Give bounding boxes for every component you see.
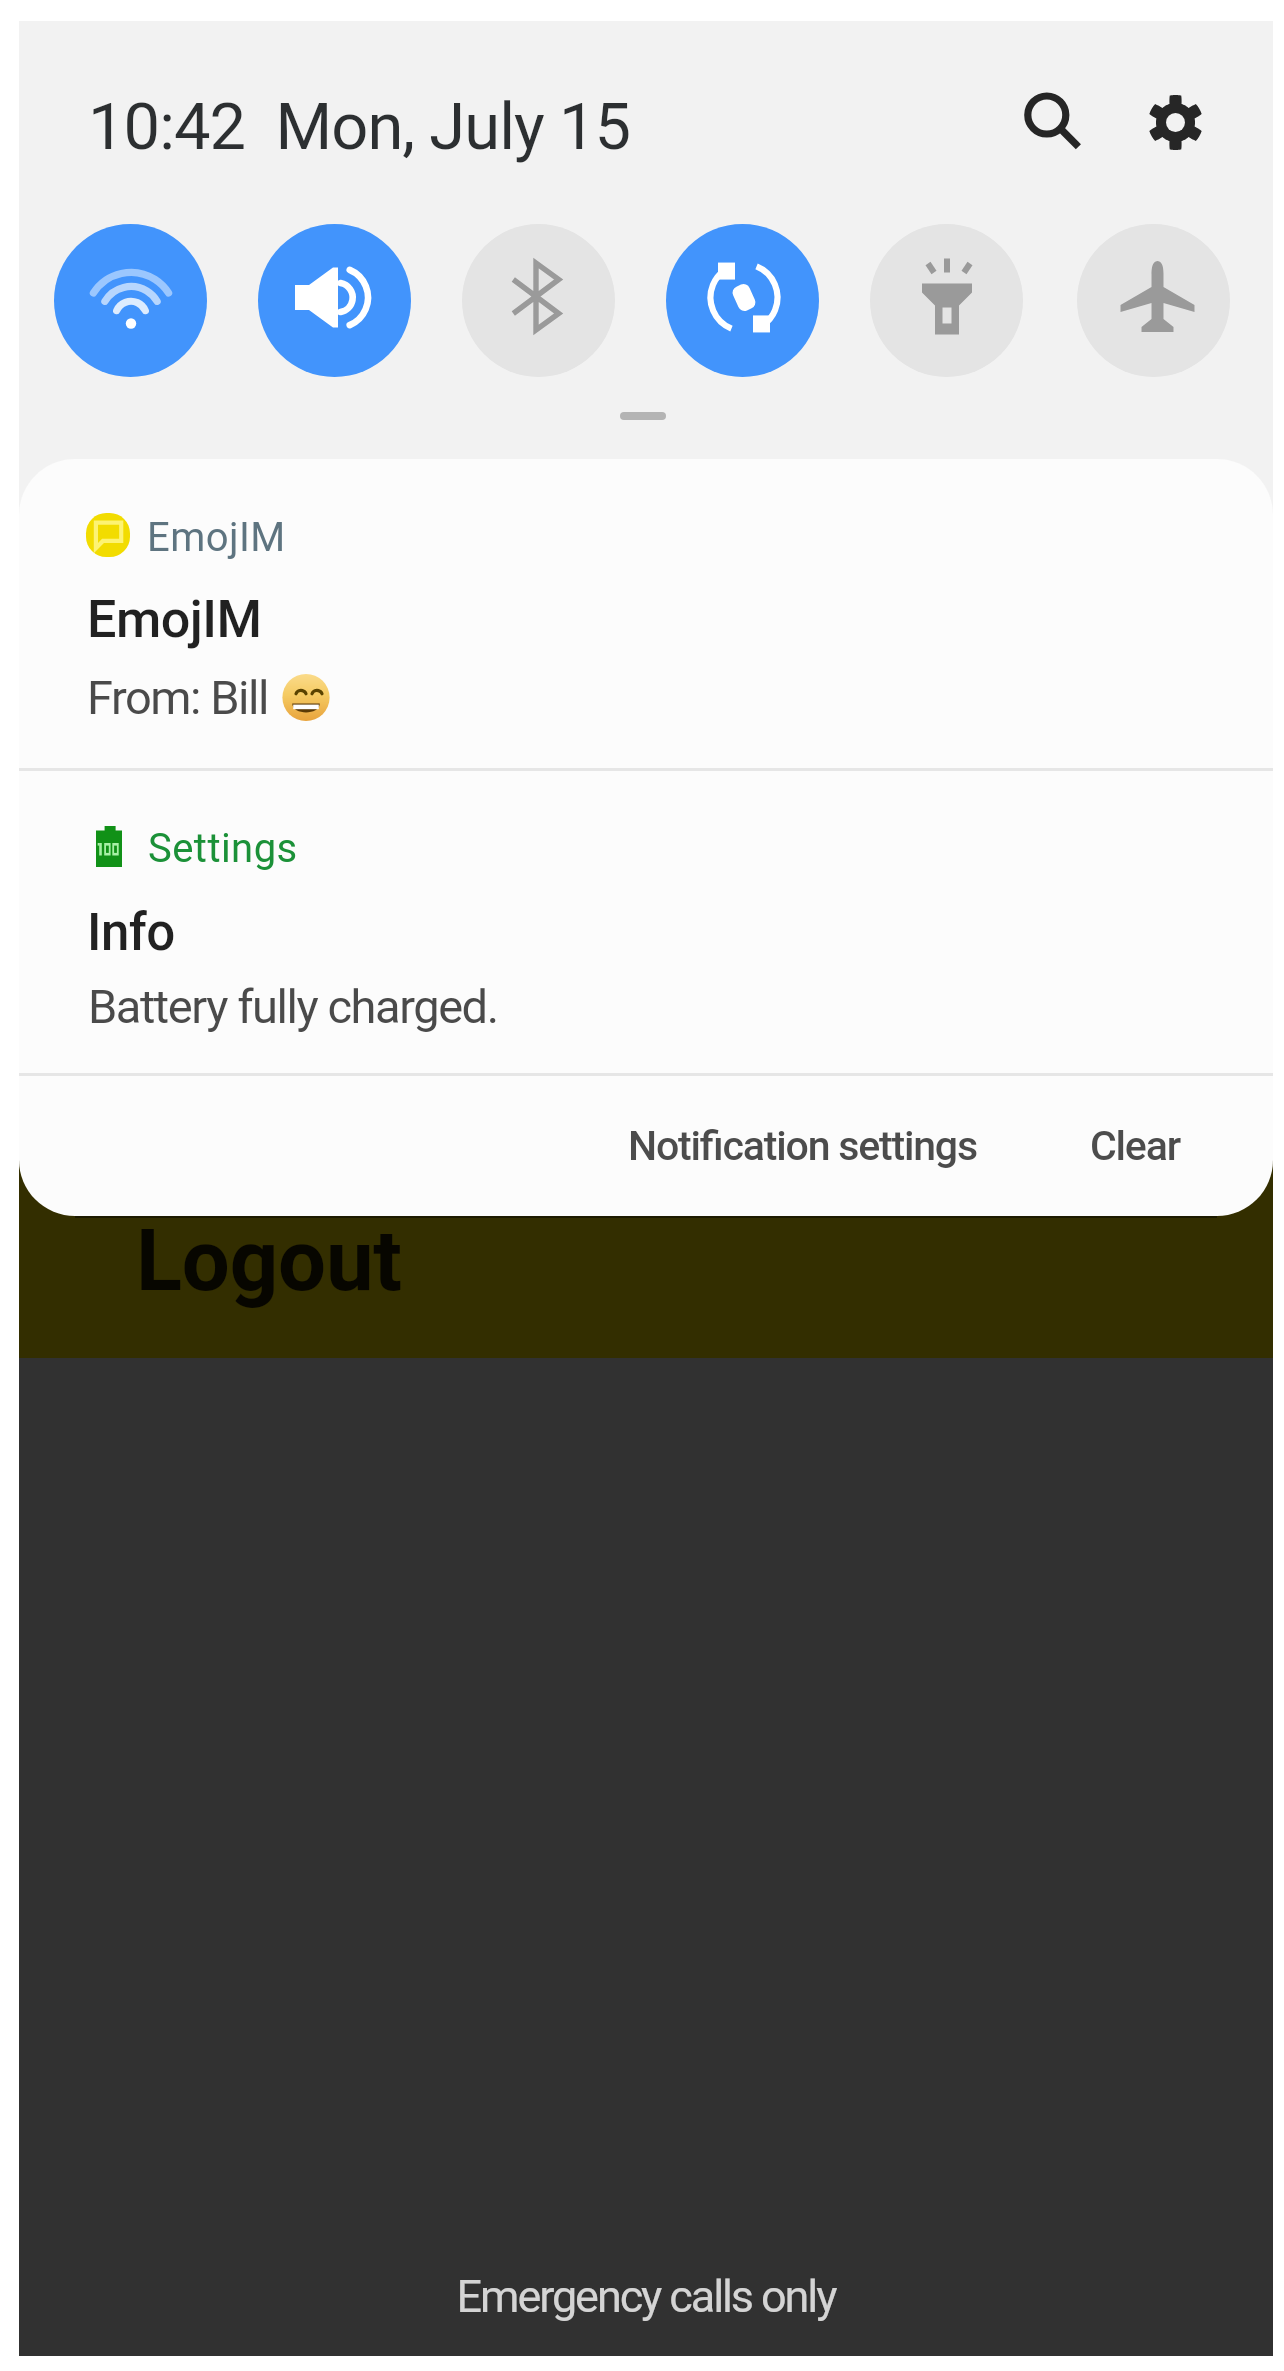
button[interactable]: Clear <box>1090 1122 1180 1170</box>
staticText: Logout <box>136 1211 402 1311</box>
button[interactable]: EmojIM <box>19 459 1273 768</box>
button[interactable]: Auto rotate <box>666 224 819 377</box>
staticText: From: Bill <box>87 670 268 725</box>
button[interactable]: Sound <box>258 224 411 377</box>
staticText: EmojIM <box>87 589 262 650</box>
staticText: Info <box>87 903 175 963</box>
button[interactable]: Settings <box>1123 70 1227 174</box>
button[interactable]: Airplane mode <box>1077 224 1230 377</box>
staticText: Notification settings <box>628 1122 977 1170</box>
staticText: EmojIM <box>147 514 286 561</box>
button[interactable]: Search <box>1000 76 1104 180</box>
staticText: Clear <box>1090 1122 1180 1170</box>
button[interactable]: Bluetooth <box>462 224 615 377</box>
button[interactable]: Wi-Fi <box>54 224 207 377</box>
staticText: 10:42 Mon, July 15 <box>88 89 631 165</box>
button[interactable]: Flashlight <box>870 224 1023 377</box>
staticText: Emergency calls only <box>19 2270 1273 2323</box>
button[interactable]: Notification settings <box>628 1122 977 1170</box>
staticText: Settings <box>148 825 298 872</box>
staticText: Battery fully charged. <box>88 979 498 1034</box>
button[interactable]: Settings <box>19 771 1273 1073</box>
button[interactable]: Logout <box>19 21 1273 1358</box>
